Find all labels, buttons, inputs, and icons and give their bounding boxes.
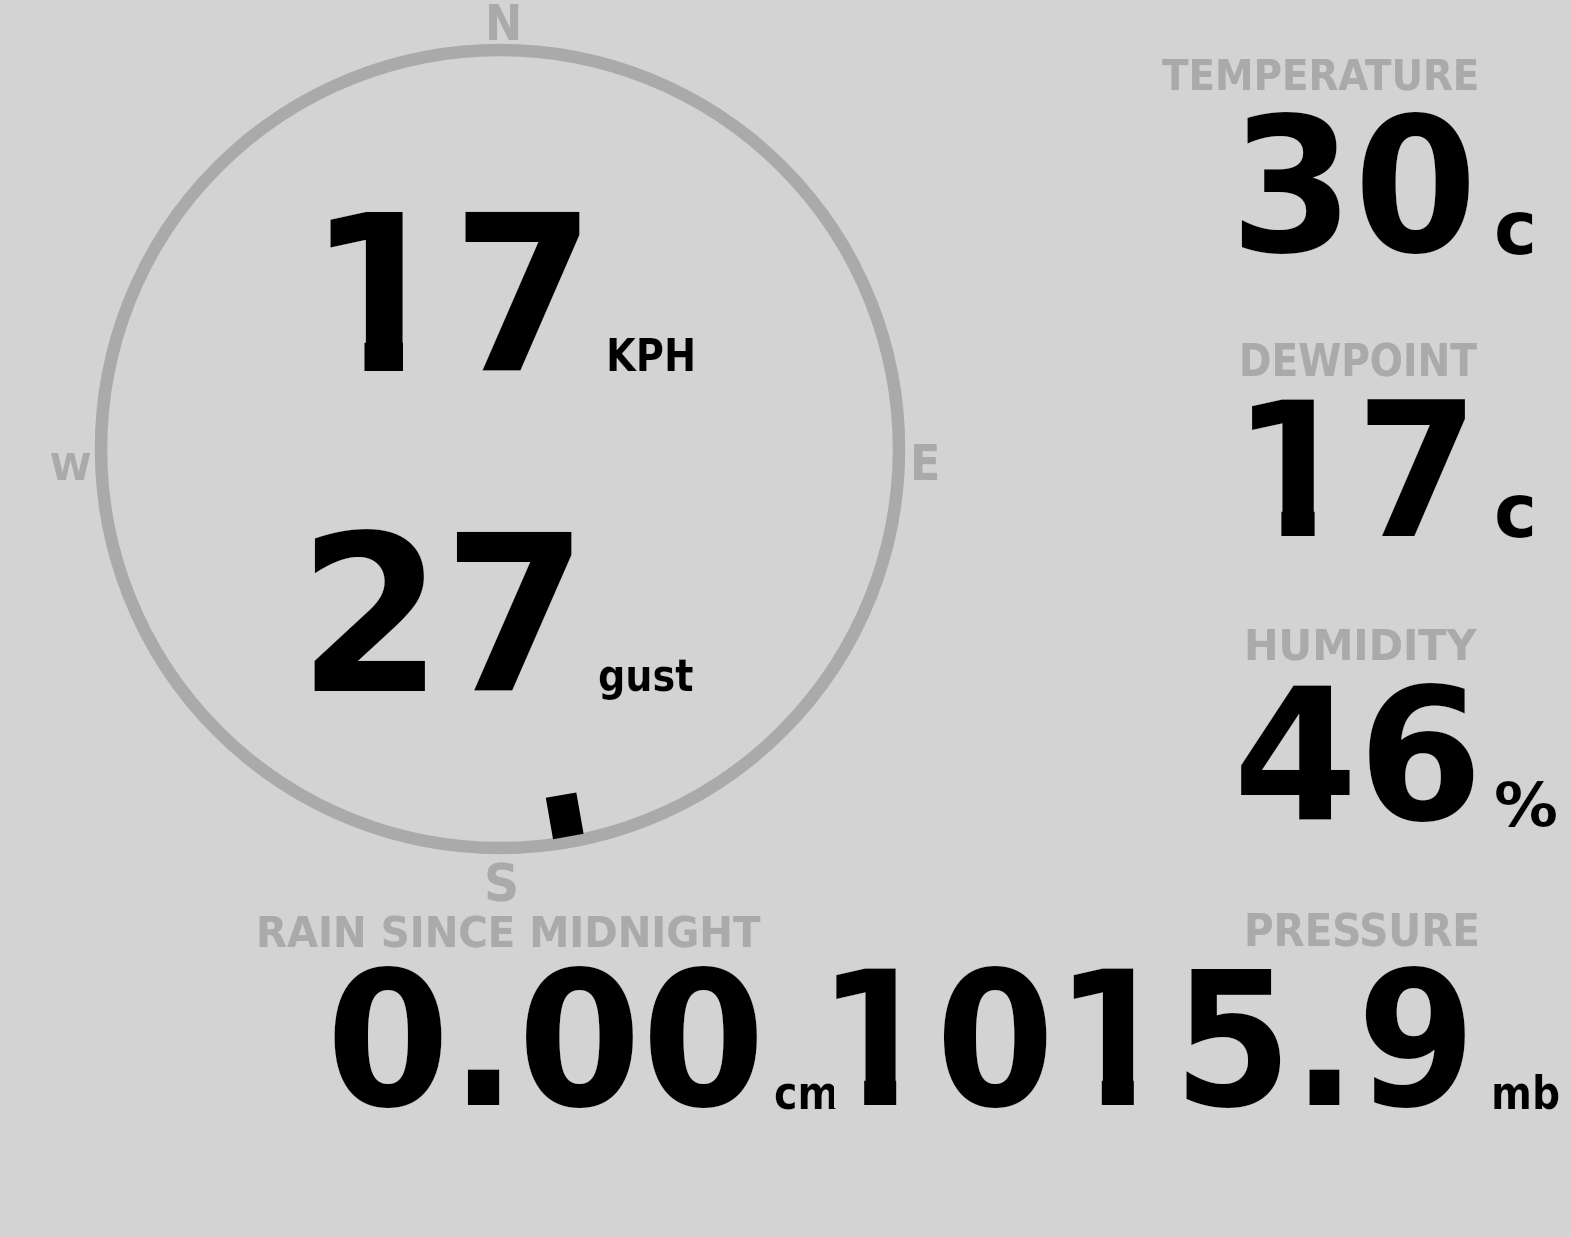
- staticText: 1015.9: [817, 931, 1476, 1150]
- staticText: 0.00: [326, 931, 766, 1150]
- staticText: c: [1494, 467, 1537, 555]
- staticText: 46: [1233, 649, 1483, 862]
- staticText: gust: [598, 650, 694, 701]
- staticText: 30: [1230, 78, 1478, 295]
- staticText: S: [484, 854, 520, 913]
- button[interactable]: Dewpoint 17 c: [1140, 325, 1571, 550]
- staticText: HUMIDITY: [1244, 620, 1477, 670]
- staticText: 27: [298, 490, 588, 743]
- staticText: W: [50, 445, 92, 489]
- staticText: KPH: [606, 330, 696, 381]
- button[interactable]: Humidity 46 percent: [1140, 610, 1571, 835]
- staticText: E: [910, 434, 941, 492]
- staticText: cm: [774, 1067, 839, 1120]
- button[interactable]: Wind 17 KPH, gusting 27, from 170 degree…: [96, 46, 904, 854]
- button[interactable]: Pressure 1015.9 mb: [855, 900, 1571, 1120]
- staticText: RAIN SINCE MIDNIGHT: [256, 908, 761, 957]
- staticText: N: [485, 0, 523, 52]
- staticText: mb: [1491, 1067, 1560, 1120]
- staticText: c: [1494, 184, 1537, 272]
- button[interactable]: Temperature 30 c: [1140, 40, 1571, 270]
- staticText: %: [1494, 770, 1558, 841]
- staticText: DEWPOINT: [1239, 335, 1478, 386]
- staticText: TEMPERATURE: [1162, 50, 1480, 100]
- staticText: PRESSURE: [1244, 905, 1480, 956]
- button[interactable]: Rain since midnight 0.00 cm: [250, 900, 850, 1120]
- staticText: 17: [307, 169, 596, 423]
- staticText: 17: [1232, 363, 1479, 580]
- other: Wind direction compass: [0, 0, 1571, 1237]
